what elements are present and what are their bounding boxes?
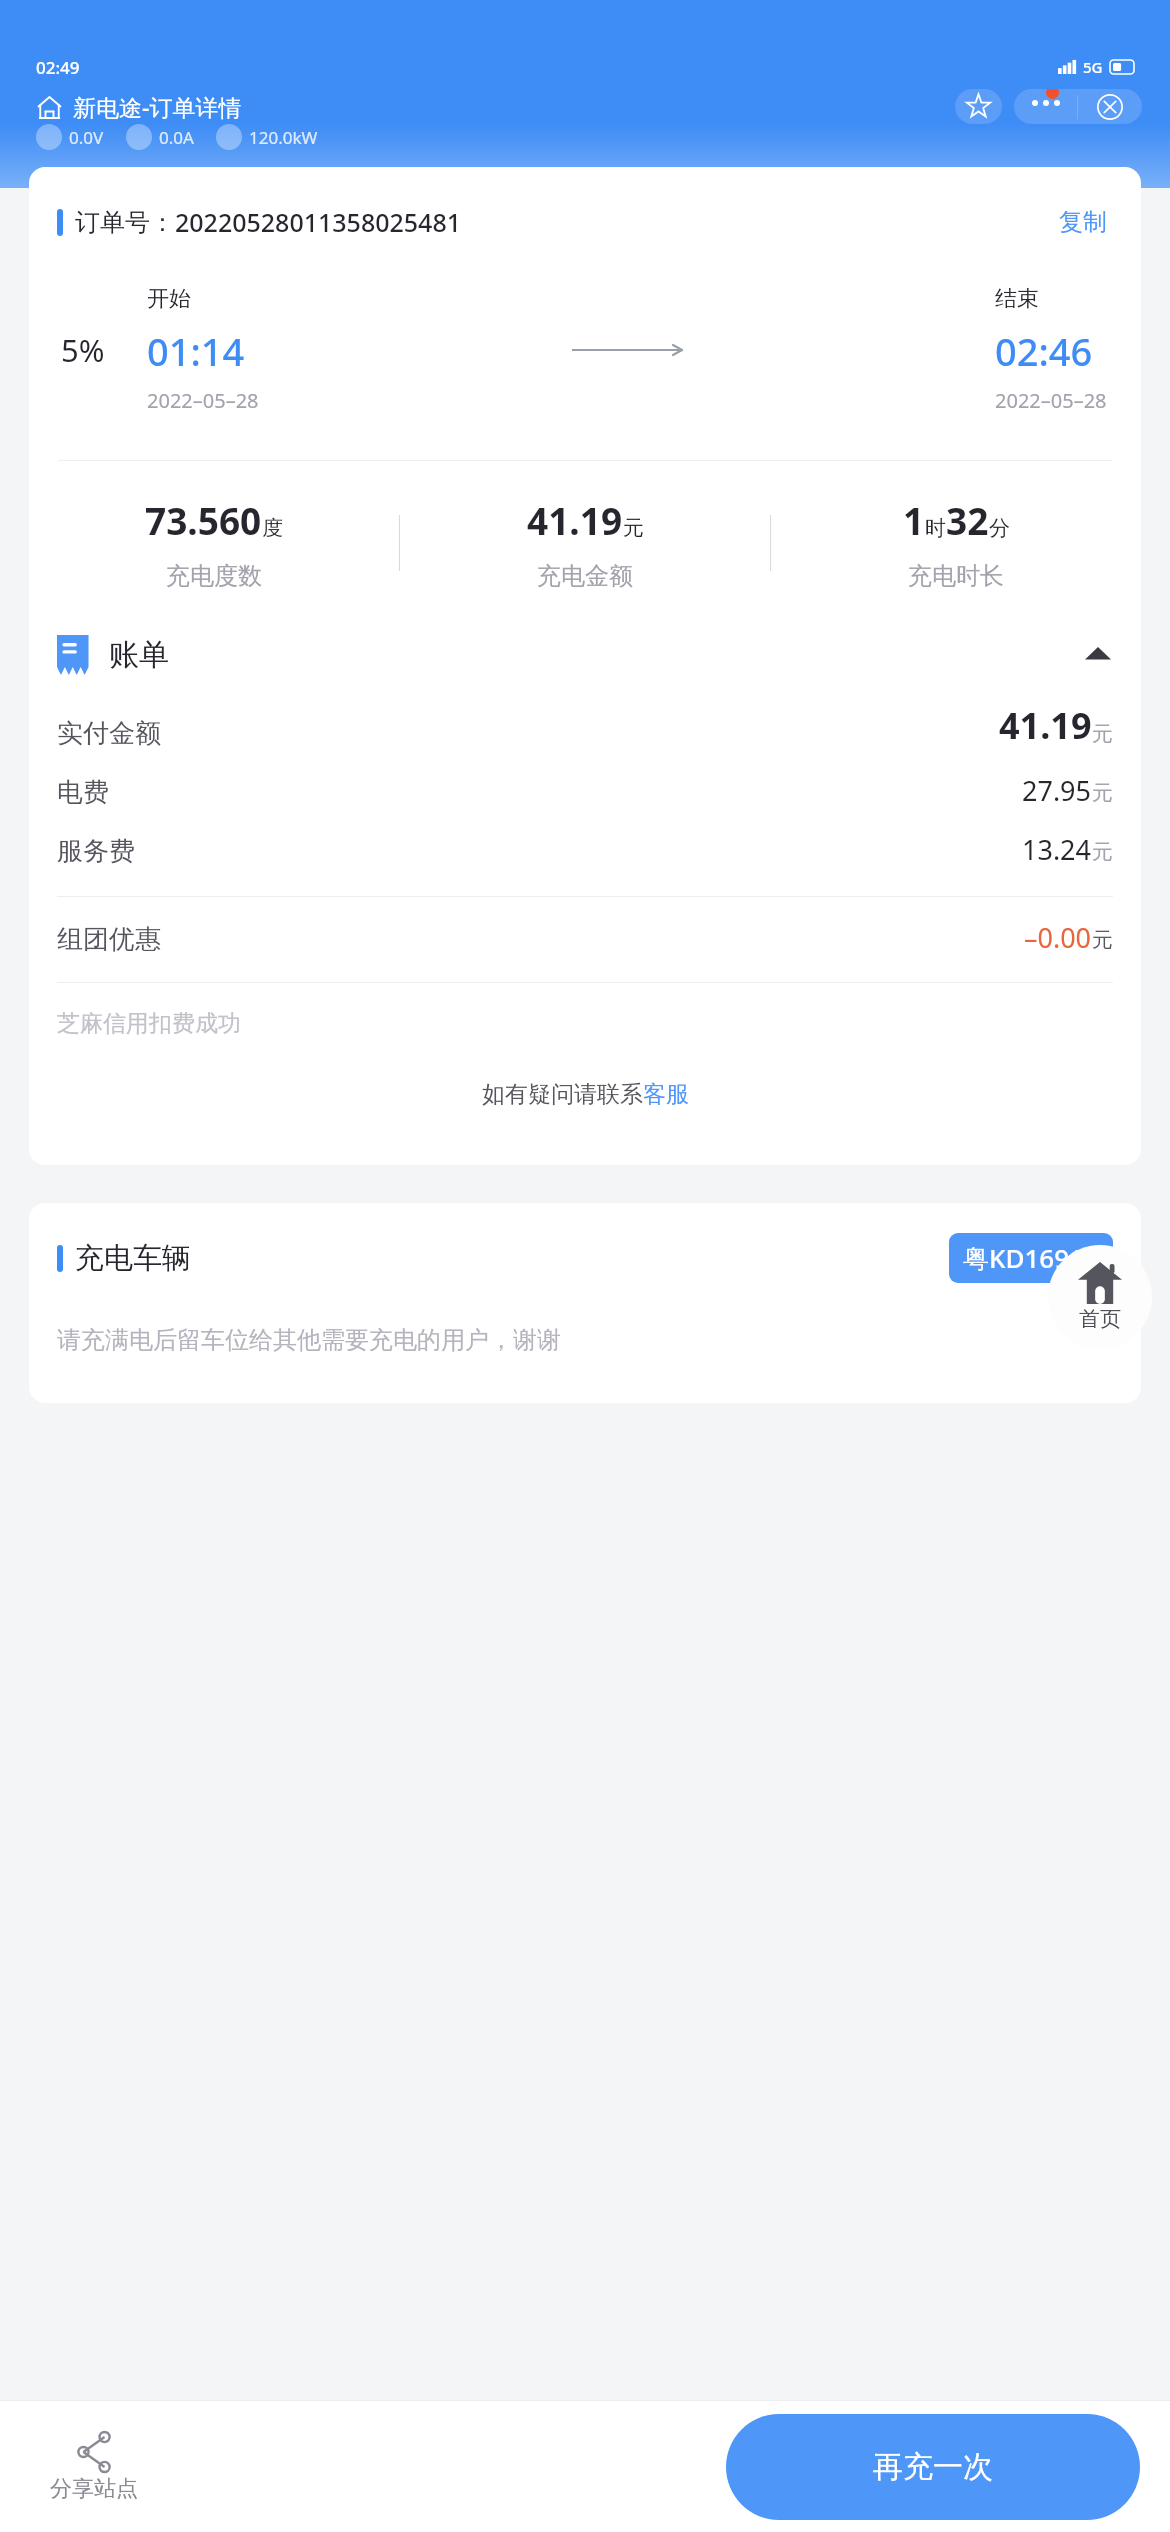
staticText: 32: [946, 495, 989, 545]
staticText: 粤KD16918: [963, 1240, 1099, 1276]
staticText: 充电时长: [908, 561, 1004, 591]
staticText: 元: [1092, 927, 1113, 953]
button[interactable]: 账单: [57, 635, 1111, 675]
staticText: 新电途-订单详情: [73, 91, 242, 122]
staticText: 再充一次: [873, 2448, 993, 2486]
staticText: 订单号：: [75, 207, 175, 238]
button[interactable]: 粤KD16918: [949, 1233, 1113, 1283]
staticText: 5G: [1083, 57, 1103, 77]
button[interactable]: 收藏: [955, 89, 1002, 124]
staticText: 元: [623, 515, 644, 541]
staticText: 分享站点: [50, 2475, 138, 2503]
staticText: 电费: [57, 776, 109, 809]
staticText: 芝麻信用扣费成功: [57, 1009, 241, 1038]
staticText: 1: [903, 495, 925, 545]
staticText: 20220528011358025481: [175, 205, 462, 239]
staticText: –0.00: [1024, 919, 1092, 956]
staticText: 41.19: [999, 701, 1092, 750]
staticText: 13.24: [1022, 831, 1092, 868]
staticText: 元: [1092, 721, 1113, 747]
staticText: 时: [925, 515, 946, 541]
staticText: 如有疑问请联系: [482, 1080, 643, 1109]
staticText: 2022–05–28: [147, 387, 259, 414]
staticText: 元: [1092, 780, 1113, 806]
staticText: 服务费: [57, 835, 135, 868]
staticText: 账单: [109, 636, 169, 674]
button[interactable]: 再充一次: [726, 2414, 1140, 2520]
staticText: 元: [1092, 839, 1113, 865]
staticText: 5%: [61, 329, 105, 371]
staticText: 73.560: [145, 495, 262, 545]
staticText: 充电金额: [537, 561, 633, 591]
staticText: 0.0A: [159, 126, 194, 149]
button[interactable]: 分享站点: [44, 2424, 144, 2509]
staticText: 120.0kW: [249, 126, 318, 149]
staticText: 首页: [1079, 1306, 1121, 1332]
staticText: 复制: [1059, 207, 1107, 237]
staticText: 结束: [995, 285, 1039, 313]
staticText: 02:49: [36, 56, 80, 79]
staticText: 2022–05–28: [995, 387, 1107, 414]
staticText: 分: [989, 515, 1010, 541]
button[interactable]: 更多: [1014, 89, 1077, 124]
staticText: 01:14: [147, 325, 245, 377]
staticText: 充电度数: [166, 561, 262, 591]
button[interactable]: 关闭: [1078, 89, 1142, 124]
staticText: 组团优惠: [57, 923, 161, 956]
staticText: 客服: [643, 1080, 689, 1109]
staticText: 27.95: [1022, 772, 1092, 809]
staticText: 度: [262, 515, 283, 541]
button[interactable]: 客服: [643, 1080, 689, 1109]
staticText: 实付金额: [57, 717, 161, 750]
staticText: 请充满电后留车位给其他需要充电的用户，谢谢: [57, 1325, 561, 1355]
staticText: 02:46: [995, 325, 1093, 377]
staticText: 开始: [147, 285, 191, 313]
button[interactable]: 复制: [1053, 201, 1113, 243]
staticText: 41.19: [527, 495, 623, 545]
button[interactable]: 首页: [1048, 1245, 1152, 1349]
button[interactable]: 首页: [32, 90, 66, 124]
staticText: 充电车辆: [75, 1240, 191, 1277]
staticText: 0.0V: [69, 126, 104, 149]
